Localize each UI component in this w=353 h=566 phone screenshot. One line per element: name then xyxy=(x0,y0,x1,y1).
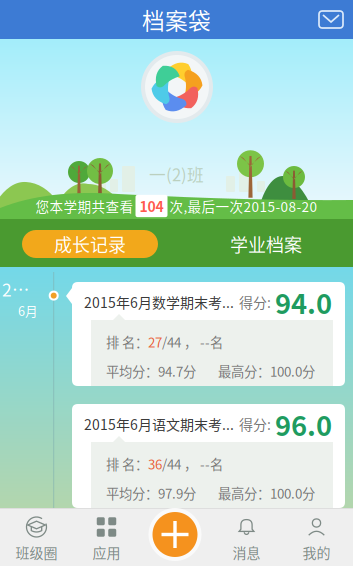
staticText: 消息 xyxy=(232,542,260,562)
staticText: /44 ， --名 xyxy=(162,454,223,473)
staticText: 25日 xyxy=(2,276,38,301)
staticText: 一(2)班 xyxy=(149,162,204,186)
button[interactable]: 成长记录 xyxy=(22,230,158,258)
button[interactable]: Messages xyxy=(309,0,353,39)
button[interactable]: 2015年6月语文期末考... xyxy=(66,404,345,508)
button[interactable]: Add xyxy=(140,508,210,566)
staticText: 学业档案 xyxy=(230,231,302,257)
staticText: 36 xyxy=(148,454,162,473)
button[interactable]: 学业档案 xyxy=(198,230,334,258)
staticText: 平均分：97.9分 xyxy=(106,483,196,503)
staticText: 2015年6月语文期末考... xyxy=(84,414,234,434)
staticText: 排 名： xyxy=(106,332,148,351)
staticText: 平均分：94.7分 xyxy=(106,361,196,381)
button[interactable]: 我的 xyxy=(281,508,351,566)
button[interactable]: 应用 xyxy=(71,508,141,566)
staticText: 96.0 xyxy=(275,404,332,444)
staticText: 档案袋 xyxy=(142,3,211,36)
button[interactable]: 消息 xyxy=(211,508,281,566)
staticText: 排 名： xyxy=(106,454,148,473)
staticText: 2015年6月数学期末考... xyxy=(84,292,234,312)
staticText: 104 xyxy=(139,196,163,216)
staticText: 得分: xyxy=(239,292,271,312)
button[interactable]: 班级圈 xyxy=(1,508,71,566)
staticText: 最高分：100.0分 xyxy=(218,361,315,381)
staticText: 得分: xyxy=(239,414,271,434)
staticText: 您本学期共查看 xyxy=(35,196,133,216)
staticText: 27 xyxy=(148,332,162,351)
staticText: 最高分：100.0分 xyxy=(218,483,315,503)
staticText: 班级圈 xyxy=(15,542,57,562)
staticText: /44 ， --名 xyxy=(162,332,223,351)
staticText: 我的 xyxy=(302,542,330,562)
staticText: 6月 xyxy=(18,301,38,320)
button[interactable]: 2015年6月数学期末考... xyxy=(66,282,345,386)
staticText: 成长记录 xyxy=(54,231,126,257)
staticText: 次,最后一次2015-08-20 xyxy=(169,196,317,216)
staticText: 94.0 xyxy=(275,282,332,322)
staticText: 应用 xyxy=(92,542,120,562)
